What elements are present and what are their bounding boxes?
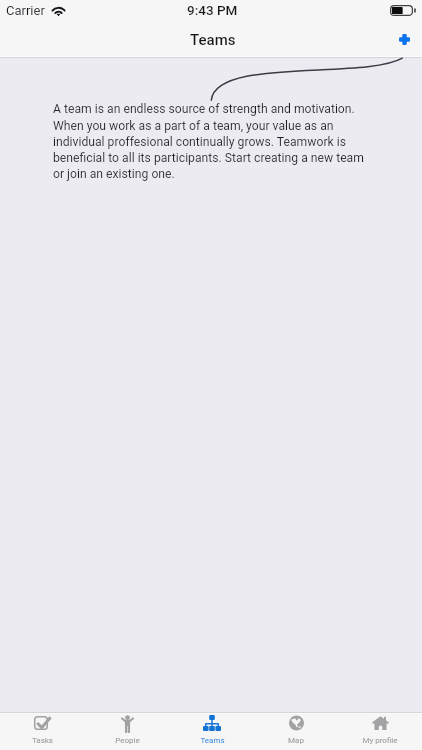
button[interactable]: Add team <box>382 18 422 58</box>
button[interactable]: My profile <box>338 712 422 750</box>
staticText: People <box>115 736 140 745</box>
button[interactable]: Tasks <box>0 712 85 750</box>
button[interactable]: People <box>85 712 170 750</box>
staticText: Carrier <box>6 3 45 18</box>
button[interactable]: Map <box>254 712 338 750</box>
staticText: Teams <box>190 31 236 49</box>
button[interactable]: Teams <box>170 712 254 750</box>
staticText: A team is an endless source of strength … <box>53 102 375 181</box>
staticText: Tasks <box>32 736 53 745</box>
staticText: Teams <box>200 736 225 745</box>
staticText: 9:43 PM <box>187 2 238 18</box>
staticText: Map <box>288 736 304 745</box>
staticText: My profile <box>362 736 398 745</box>
